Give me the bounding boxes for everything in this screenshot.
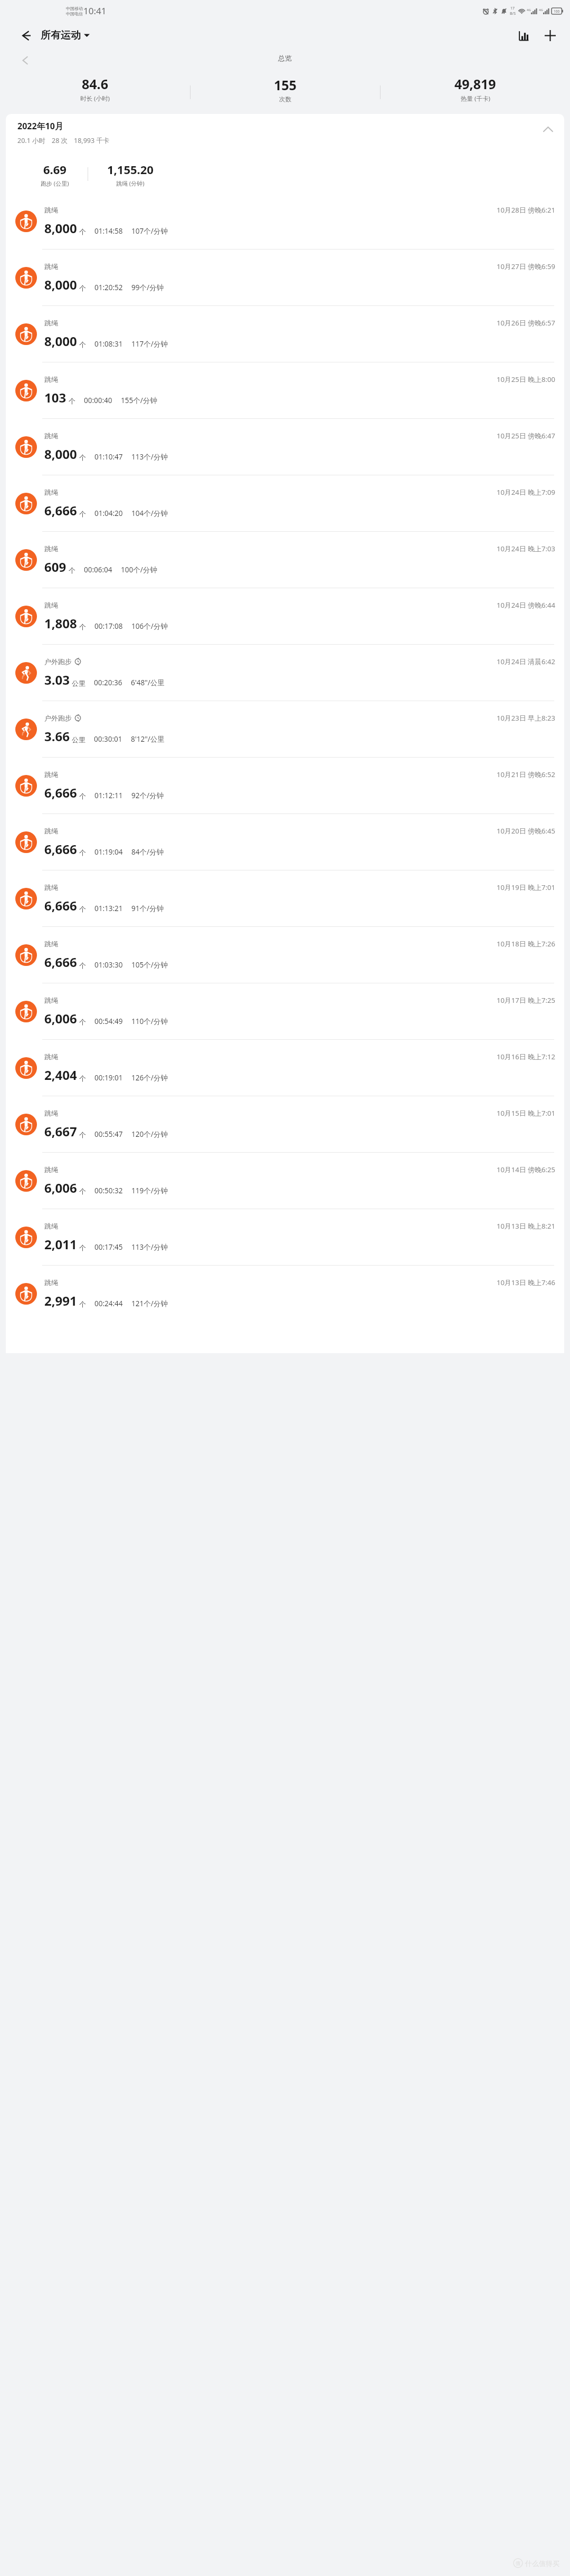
staticText: 个 bbox=[79, 848, 86, 857]
button[interactable]: 跳绳 bbox=[6, 1040, 564, 1096]
staticText: 2,991 bbox=[44, 1292, 77, 1309]
staticText: 6,666 bbox=[44, 784, 77, 801]
staticText: 6,666 bbox=[44, 953, 77, 971]
staticText: 个 bbox=[69, 397, 75, 405]
button[interactable]: 跳绳 bbox=[6, 250, 564, 305]
staticText: 120个/分钟 bbox=[131, 1129, 168, 1139]
staticText: 107个/分钟 bbox=[131, 226, 168, 236]
button[interactable]: 跳绳 bbox=[6, 419, 564, 475]
staticText: 跳绳 bbox=[44, 206, 58, 214]
button[interactable]: 所有运动 bbox=[41, 29, 90, 42]
button[interactable]: 2022年10月 bbox=[6, 114, 564, 155]
button[interactable]: 跳绳 bbox=[6, 1096, 564, 1152]
button[interactable]: 6.69 bbox=[22, 161, 88, 187]
staticText: 6'48"/公里 bbox=[131, 678, 165, 687]
staticText: 18,993 千卡 bbox=[74, 136, 110, 145]
staticText: 跳绳 bbox=[44, 432, 58, 440]
staticText: 2,011 bbox=[44, 1236, 77, 1253]
staticText: 00:20:36 bbox=[94, 678, 122, 687]
staticText: 126个/分钟 bbox=[131, 1073, 168, 1083]
button[interactable]: 跳绳 bbox=[6, 758, 564, 813]
staticText: 中国电信 bbox=[66, 11, 83, 16]
staticText: 个 bbox=[79, 340, 86, 349]
staticText: 10月17日 晚上7:25 bbox=[497, 995, 555, 1005]
button[interactable]: 跳绳 bbox=[6, 927, 564, 983]
staticText: 跳绳 bbox=[44, 940, 58, 948]
staticText: 个 bbox=[79, 1131, 86, 1139]
staticText: 103 bbox=[44, 389, 66, 406]
staticText: 跳绳 bbox=[44, 375, 58, 384]
staticText: 跑步 (公里) bbox=[41, 179, 69, 187]
staticText: 117个/分钟 bbox=[131, 339, 168, 349]
staticText: 跳绳 bbox=[44, 1165, 58, 1174]
staticText: 8'12"/公里 bbox=[131, 734, 165, 744]
staticText: 8,000 bbox=[44, 445, 77, 463]
staticText: 01:19:04 bbox=[94, 847, 123, 857]
staticText: 中国移动 bbox=[66, 6, 83, 11]
button[interactable]: 户外跑步 bbox=[6, 645, 564, 701]
button[interactable]: 跳绳 bbox=[6, 362, 564, 418]
button[interactable]: 跳绳 bbox=[6, 588, 564, 644]
staticText: 3.03 bbox=[44, 671, 70, 688]
staticText: 155 bbox=[274, 76, 297, 94]
button[interactable]: Statistics bbox=[513, 25, 534, 46]
button[interactable]: 跳绳 bbox=[6, 814, 564, 870]
button[interactable]: 跳绳 bbox=[6, 532, 564, 588]
staticText: 110个/分钟 bbox=[131, 1017, 168, 1026]
staticText: 个 bbox=[79, 453, 86, 462]
staticText: 10月25日 晚上8:00 bbox=[497, 375, 555, 384]
button[interactable]: Previous bbox=[17, 52, 33, 68]
staticText: 10月24日 傍晚6:44 bbox=[497, 600, 555, 610]
staticText: 跳绳 bbox=[44, 1222, 58, 1230]
button[interactable]: 1,155.20 bbox=[88, 161, 173, 187]
staticText: 6,006 bbox=[44, 1179, 77, 1196]
staticText: 个 bbox=[79, 1187, 86, 1195]
staticText: 10月23日 早上8:23 bbox=[497, 713, 555, 723]
staticText: 3.66 bbox=[44, 727, 70, 745]
button[interactable]: 跳绳 bbox=[6, 870, 564, 926]
button[interactable]: 跳绳 bbox=[6, 306, 564, 362]
staticText: 113个/分钟 bbox=[131, 1242, 168, 1252]
staticText: 609 bbox=[44, 558, 66, 576]
staticText: 17 bbox=[510, 6, 515, 11]
button[interactable]: 跳绳 bbox=[6, 1153, 564, 1209]
button[interactable]: 户外跑步 bbox=[6, 701, 564, 757]
staticText: 10月24日 晚上7:09 bbox=[497, 487, 555, 497]
staticText: 公里 bbox=[72, 735, 85, 744]
staticText: 2,404 bbox=[44, 1066, 77, 1084]
staticText: 49,819 bbox=[454, 75, 496, 93]
staticText: 00:17:08 bbox=[94, 621, 123, 631]
staticText: 跳绳 bbox=[44, 488, 58, 496]
staticText: 00:50:32 bbox=[94, 1186, 123, 1195]
button[interactable]: 跳绳 bbox=[6, 475, 564, 531]
staticText: 104个/分钟 bbox=[131, 509, 168, 518]
staticText: 10月21日 傍晚6:52 bbox=[497, 770, 555, 779]
staticText: 28 次 bbox=[52, 136, 68, 145]
staticText: 01:08:31 bbox=[94, 339, 123, 349]
button[interactable]: 跳绳 bbox=[6, 1266, 564, 1321]
staticText: 4G bbox=[527, 8, 531, 12]
button[interactable]: 49,819 bbox=[381, 75, 570, 103]
staticText: 100 bbox=[554, 9, 560, 14]
staticText: 8,000 bbox=[44, 276, 77, 293]
staticText: 跳绳 bbox=[44, 827, 58, 835]
button[interactable]: 跳绳 bbox=[6, 193, 564, 249]
staticText: 跳绳 bbox=[44, 262, 58, 271]
staticText: 热量 (千卡) bbox=[461, 94, 490, 103]
button[interactable]: Add bbox=[539, 25, 560, 46]
button[interactable]: 84.6 bbox=[0, 75, 190, 103]
staticText: 6,667 bbox=[44, 1123, 77, 1140]
staticText: 跳绳 bbox=[44, 1052, 58, 1061]
staticText: 00:54:49 bbox=[94, 1017, 123, 1026]
button[interactable]: 跳绳 bbox=[6, 983, 564, 1039]
staticText: 跳绳 bbox=[44, 319, 58, 327]
staticText: 91个/分钟 bbox=[131, 904, 164, 913]
staticText: 10月16日 晚上7:12 bbox=[497, 1052, 555, 1061]
button[interactable]: 跳绳 bbox=[6, 1209, 564, 1265]
staticText: 119个/分钟 bbox=[131, 1186, 168, 1195]
button[interactable]: Back bbox=[17, 26, 35, 44]
staticText: 所有运动 bbox=[41, 29, 81, 42]
staticText: 跳绳 bbox=[44, 1278, 58, 1287]
staticText: 01:13:21 bbox=[94, 904, 123, 913]
button[interactable]: 155 bbox=[191, 76, 380, 103]
